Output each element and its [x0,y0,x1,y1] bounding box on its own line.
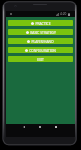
button[interactable]: Recents [53,124,59,129]
button[interactable]: CONFIGURATION [8,47,73,53]
staticText: PRACTICE [35,21,51,25]
staticText: EXIT [37,57,44,61]
button[interactable]: Home [37,124,43,129]
button[interactable]: PLAYER/HAND [8,38,73,44]
staticText: 4:20 [60,12,67,16]
button[interactable]: BASIC STRATEGY [8,29,73,35]
button[interactable]: EXIT [8,56,73,62]
button[interactable]: PRACTICE [8,20,73,26]
button[interactable]: Back [21,124,27,129]
staticText: CONFIGURATION [29,48,56,52]
staticText: BASIC STRATEGY [30,30,56,34]
staticText: PLAYER/HAND [31,39,54,43]
